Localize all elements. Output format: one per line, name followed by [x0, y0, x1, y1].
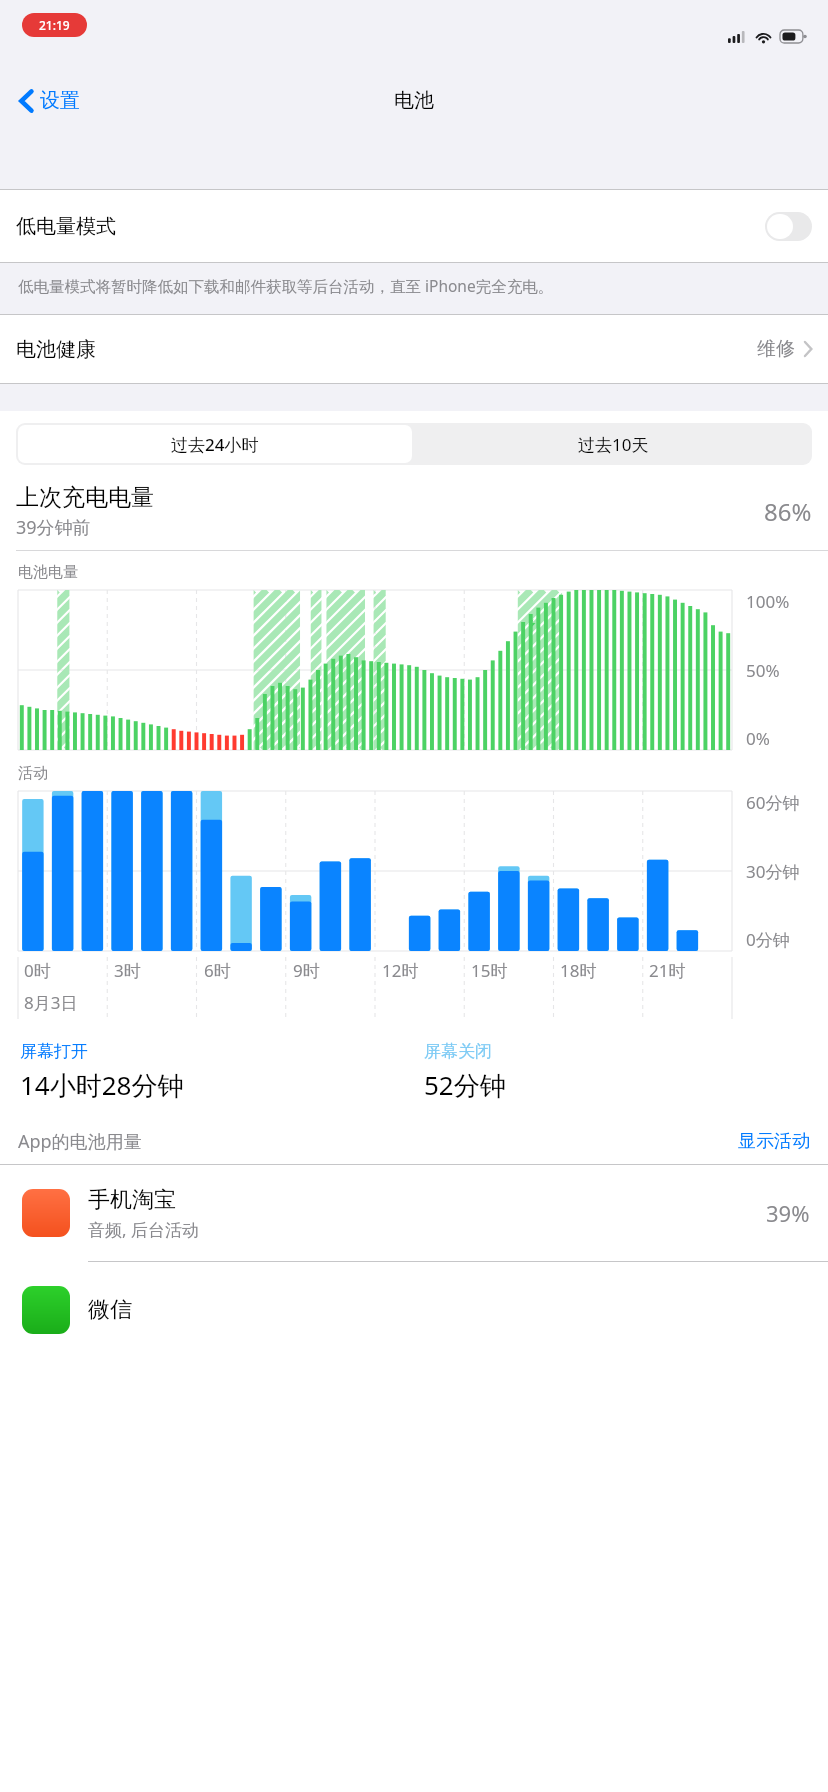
staticText: 微信 — [88, 1296, 132, 1324]
staticText: 39% — [766, 1198, 810, 1228]
staticText: 14小时28分钟 — [20, 1067, 184, 1103]
staticText: 9时 — [293, 959, 320, 982]
staticText: 活动 — [18, 764, 48, 783]
staticText: 0% — [746, 727, 770, 750]
staticText: 低电量模式 — [16, 214, 765, 239]
staticText: 手机淘宝 — [88, 1186, 176, 1214]
button[interactable]: 低电量模式开关 — [765, 212, 812, 241]
staticText: 维修 — [757, 337, 795, 361]
staticText: 50% — [746, 659, 780, 682]
staticText: 8月3日 — [24, 991, 78, 1014]
staticText: 0分钟 — [746, 928, 790, 951]
button[interactable]: 手机淘宝 — [0, 1165, 828, 1261]
staticText: 86% — [764, 495, 812, 528]
staticText: 电池电量 — [18, 563, 78, 582]
staticText: 低电量模式将暂时降低如下载和邮件获取等后台活动，直至 iPhone完全充电。 — [18, 275, 554, 296]
staticText: 21:19 — [39, 17, 70, 33]
staticText: 显示活动 — [738, 1130, 810, 1153]
button[interactable]: 过去24小时 — [18, 425, 412, 463]
staticText: 电池健康 — [16, 337, 757, 362]
staticText: 100% — [746, 590, 790, 613]
staticText: 电池 — [394, 88, 434, 113]
staticText: 60分钟 — [746, 791, 800, 814]
staticText: 过去24小时 — [171, 433, 259, 456]
staticText: 12时 — [382, 959, 419, 982]
staticText: 上次充电电量 — [16, 483, 154, 512]
staticText: 过去10天 — [578, 433, 649, 456]
staticText: 39分钟前 — [16, 515, 91, 540]
staticText: 15时 — [471, 959, 508, 982]
staticText: 音频, 后台活动 — [88, 1218, 199, 1241]
staticText: 屏幕打开 — [20, 1041, 88, 1062]
staticText: 30分钟 — [746, 860, 800, 883]
staticText: 0时 — [24, 959, 51, 982]
staticText: 屏幕关闭 — [424, 1041, 492, 1062]
button[interactable]: 过去10天 — [414, 423, 812, 465]
button[interactable]: 微信 — [0, 1262, 828, 1358]
staticText: 3时 — [114, 959, 141, 982]
staticText: App的电池用量 — [18, 1129, 738, 1154]
staticText: 21时 — [649, 959, 686, 982]
button[interactable]: 电池健康 — [0, 315, 828, 383]
staticText: 52分钟 — [424, 1067, 506, 1103]
button[interactable]: 显示活动 — [738, 1130, 810, 1153]
staticText: 18时 — [560, 959, 597, 982]
button[interactable]: 低电量模式 — [0, 190, 828, 262]
staticText: 6时 — [204, 959, 231, 982]
button[interactable]: 设置 — [14, 82, 86, 119]
staticText: 设置 — [40, 88, 80, 113]
